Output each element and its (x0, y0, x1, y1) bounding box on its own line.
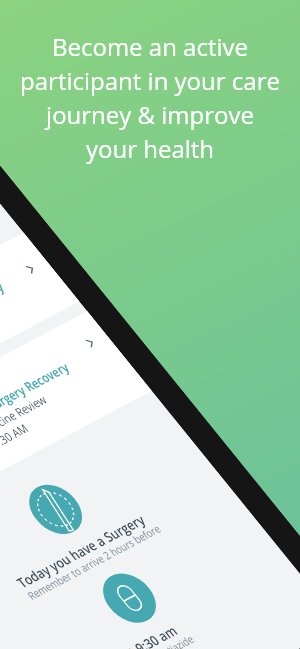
button[interactable]: Today at 9:30 am (0, 406, 300, 649)
staticText: Become an active participant in your car… (20, 30, 280, 165)
staticText: Today at 9:30 am (84, 598, 184, 649)
staticText: Today you have a Surgery (10, 476, 152, 627)
button[interactable]: Today you have a Surgery (0, 317, 232, 649)
button[interactable]: Post-Surgery Recovery (0, 239, 166, 600)
button[interactable]: Post-Surgery Recovery (0, 160, 91, 510)
staticText: Remember to arrive 2 hours before (22, 484, 166, 639)
staticText: Post-Surgery Recovery (0, 330, 76, 455)
staticText: Take Hydrochlorotiazide (96, 606, 199, 649)
other: Open (80, 333, 101, 352)
other: Open (21, 259, 41, 279)
staticText: Medicine Review (0, 372, 53, 459)
staticText: 10:30 AM (0, 409, 34, 464)
staticText: Post-Surgery Recovery (0, 250, 11, 375)
